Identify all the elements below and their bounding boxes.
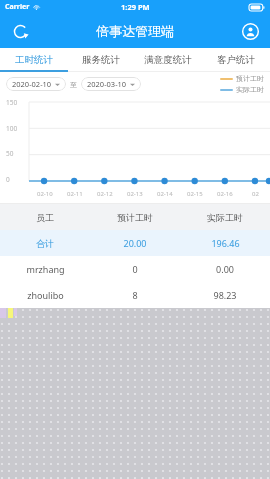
button[interactable]: 工时统计 — [0, 48, 67, 72]
staticText: 02-15 — [187, 190, 203, 198]
button[interactable]: 员工 — [0, 204, 270, 230]
staticText: 98.23 — [213, 289, 237, 301]
staticText: 满意度统计 — [144, 54, 192, 66]
staticText: 02-14 — [157, 190, 173, 198]
staticText: 20.00 — [123, 237, 147, 249]
staticText: 实际工时 — [236, 85, 264, 94]
staticText: 2020-03-10 — [87, 79, 127, 89]
staticText: 实际工时 — [207, 212, 243, 223]
button[interactable]: 服务统计 — [67, 48, 134, 72]
staticText: 0 — [132, 263, 138, 275]
staticText: zhoulibo — [27, 289, 64, 301]
staticText: 1:29 PM — [121, 2, 150, 12]
button[interactable]: 2020-02-10 — [6, 77, 66, 91]
staticText: 员工 — [36, 212, 54, 223]
staticText: 02-10 — [37, 190, 53, 198]
button[interactable]: 2020-03-10 — [81, 77, 141, 91]
staticText: 02-12 — [97, 190, 113, 198]
staticText: 客户统计 — [217, 54, 255, 66]
staticText: 50 — [6, 149, 14, 158]
staticText: 02 — [252, 190, 259, 198]
staticText: 02-16 — [217, 190, 233, 198]
staticText: 0 — [6, 175, 10, 184]
button[interactable]: Refresh — [8, 19, 32, 43]
staticText: 至 — [70, 80, 77, 89]
button[interactable]: zhoulibo — [0, 282, 270, 308]
staticText: 100 — [6, 124, 18, 133]
button[interactable]: 满意度统计 — [134, 48, 202, 72]
staticText: 0.00 — [216, 263, 234, 275]
staticText: 预计工时 — [236, 74, 264, 83]
staticText: 服务统计 — [82, 54, 120, 66]
staticText: 预计工时 — [117, 212, 153, 223]
staticText: 02-13 — [127, 190, 143, 198]
staticText: 倍事达管理端 — [96, 23, 174, 39]
button[interactable]: mrzhang — [0, 256, 270, 282]
staticText: 8 — [132, 289, 138, 301]
button[interactable]: 合计 — [0, 230, 270, 256]
staticText: 150 — [6, 98, 18, 107]
staticText: 2020-02-10 — [12, 79, 52, 89]
staticText: 02-11 — [67, 190, 83, 198]
staticText: Carrier — [5, 2, 30, 12]
staticText: mrzhang — [26, 263, 65, 275]
button[interactable]: Account — [238, 19, 262, 43]
button[interactable]: 客户统计 — [202, 48, 270, 72]
staticText: 196.46 — [211, 237, 240, 249]
staticText: 合计 — [36, 238, 54, 249]
staticText: 工时统计 — [15, 54, 53, 66]
